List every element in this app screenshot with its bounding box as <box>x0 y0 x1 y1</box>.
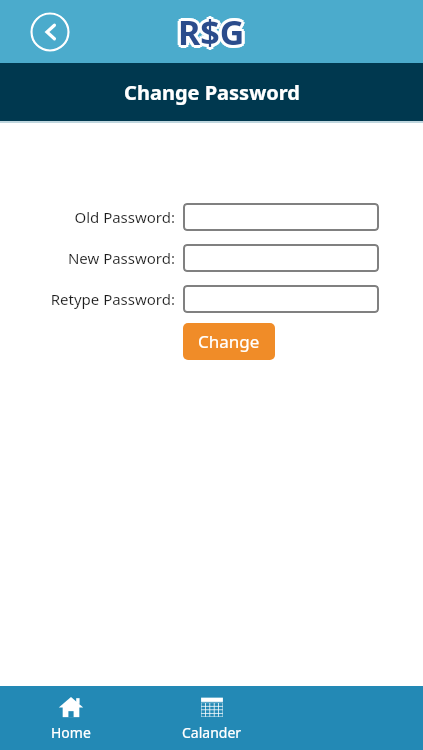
staticText: New Password: <box>67 248 175 268</box>
button[interactable] <box>183 203 379 231</box>
staticText: Change Password <box>124 79 300 106</box>
button[interactable] <box>183 285 379 313</box>
button[interactable]: Calander <box>141 686 282 750</box>
staticText: Home <box>51 723 91 742</box>
button[interactable]: Back <box>30 12 70 52</box>
staticText: Calander <box>182 723 242 742</box>
staticText: R$G <box>176 11 243 57</box>
button[interactable] <box>183 244 379 272</box>
staticText: R$G <box>181 9 248 55</box>
button[interactable]: Change <box>183 323 275 360</box>
button[interactable]: Home <box>0 686 141 750</box>
staticText: R$G <box>180 11 247 57</box>
staticText: R$G <box>178 12 245 58</box>
staticText: R$G <box>176 7 243 53</box>
staticText: R$G <box>180 7 247 53</box>
staticText: R$G <box>178 6 245 52</box>
staticText: Retype Password: <box>50 289 175 309</box>
staticText: R$G <box>175 9 242 55</box>
staticText: R$G <box>178 9 245 55</box>
staticText: Old Password: <box>74 207 175 227</box>
staticText: Change <box>198 330 260 353</box>
